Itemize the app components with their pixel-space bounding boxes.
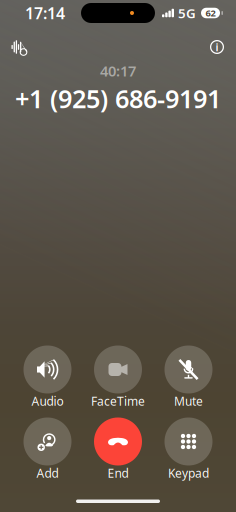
- staticText: 5G: [178, 4, 196, 22]
- staticText: FaceTime: [91, 393, 145, 409]
- staticText: Add: [36, 465, 58, 481]
- staticText: Mute: [174, 393, 203, 409]
- staticText: i: [215, 40, 218, 54]
- button[interactable]: Keypad: [156, 417, 220, 478]
- button[interactable]: End: [86, 417, 150, 478]
- button[interactable]: Add: [15, 417, 79, 478]
- staticText: +1 (925) 686-9191: [15, 81, 221, 115]
- button[interactable]: Mic Mode: [4, 36, 34, 58]
- staticText: 62: [205, 7, 215, 19]
- staticText: Keypad: [168, 465, 209, 481]
- button[interactable]: Mute: [156, 345, 220, 406]
- button[interactable]: Audio: [15, 345, 79, 406]
- staticText: 17:14: [25, 2, 65, 24]
- staticText: Audio: [31, 393, 63, 409]
- staticText: End: [107, 465, 128, 481]
- button[interactable]: FaceTime: [86, 345, 150, 406]
- staticText: 40:17: [100, 61, 136, 80]
- button[interactable]: Call Details: [202, 36, 232, 58]
